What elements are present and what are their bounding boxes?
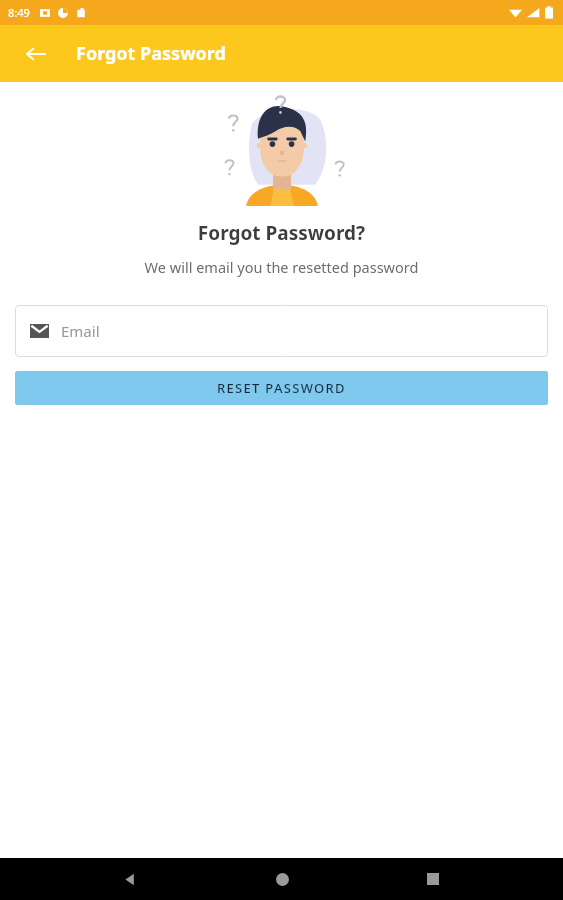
staticText: RESET PASSWORD [217,379,346,397]
staticText: Email [61,321,100,341]
staticText: 8:49 [8,5,30,20]
button[interactable]: Back [108,858,152,900]
button[interactable]: RESET PASSWORD [15,371,548,405]
button[interactable]: Recent apps [411,858,455,900]
button[interactable]: Home [260,858,304,900]
button[interactable]: Email [15,305,548,357]
staticText: We will email you the resetted password [0,257,563,277]
button[interactable]: Back [12,30,60,78]
staticText: Forgot Password [76,41,226,66]
staticText: Forgot Password? [0,220,563,246]
